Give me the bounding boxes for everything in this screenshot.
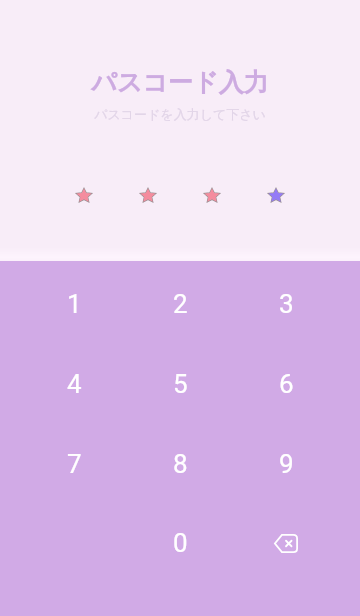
staticText: パスコード入力 (91, 67, 269, 98)
button[interactable]: 0 (136, 503, 224, 583)
staticText: 7 (67, 449, 82, 479)
staticText: 5 (173, 369, 188, 399)
button[interactable]: 2 (136, 264, 224, 344)
staticText: 8 (173, 449, 188, 479)
button[interactable]: 4 (30, 344, 118, 424)
button[interactable]: 5 (136, 344, 224, 424)
other: Backspace (274, 534, 298, 553)
staticText: 2 (173, 289, 188, 319)
button[interactable]: 1 (30, 264, 118, 344)
button[interactable]: 7 (30, 424, 118, 504)
staticText: 0 (173, 528, 188, 558)
button[interactable]: 9 (242, 424, 330, 504)
staticText: 1 (67, 289, 82, 319)
staticText: 6 (279, 369, 294, 399)
button[interactable]: Backspace (242, 503, 330, 583)
staticText: 4 (67, 369, 82, 399)
button[interactable]: 3 (242, 264, 330, 344)
button[interactable]: 8 (136, 424, 224, 504)
button[interactable]: 6 (242, 344, 330, 424)
staticText: パスコードを入力して下さい (94, 106, 266, 122)
staticText: 9 (279, 449, 294, 479)
staticText: 3 (279, 289, 294, 319)
